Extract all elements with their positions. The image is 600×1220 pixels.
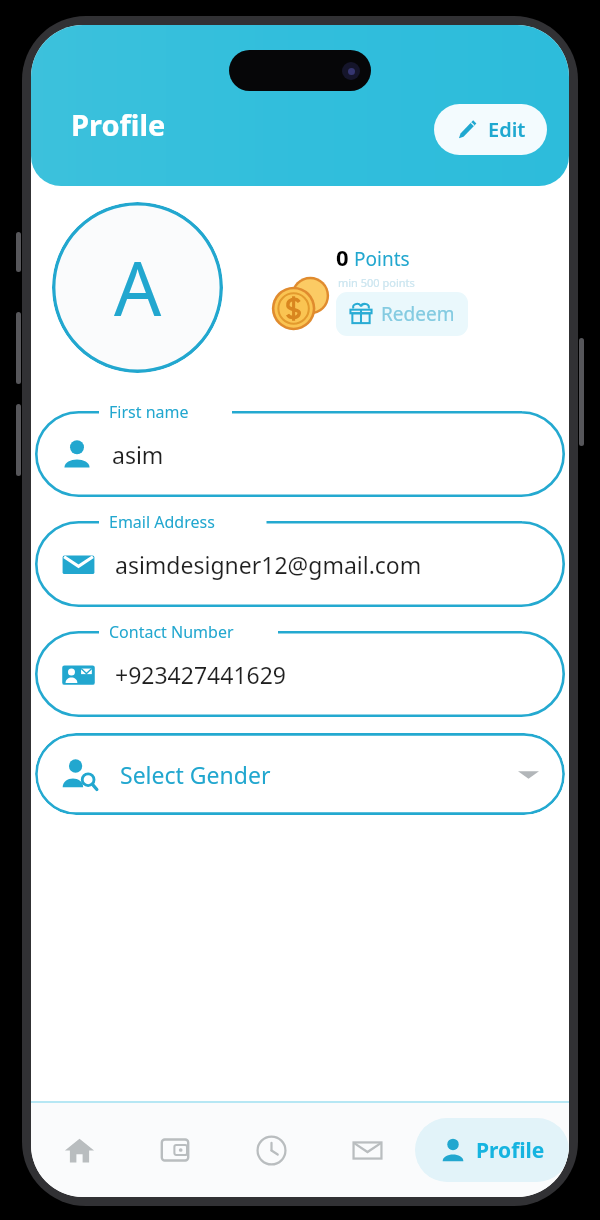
staticText: min 500 points <box>338 275 415 290</box>
button[interactable]: Profile <box>415 1118 569 1182</box>
staticText: First name <box>109 401 189 423</box>
staticText: 0 <box>336 242 349 272</box>
staticText: Profile <box>476 1136 545 1165</box>
button[interactable]: Profile photo <box>52 202 223 373</box>
staticText: asim <box>112 439 164 470</box>
button[interactable]: Messages <box>319 1103 415 1197</box>
button[interactable]: Home <box>31 1103 127 1197</box>
button[interactable] <box>35 521 565 607</box>
button[interactable]: Edit <box>434 104 547 155</box>
button[interactable] <box>35 631 565 717</box>
staticText: Profile <box>71 105 166 144</box>
staticText: asimdesigner12@gmail.com <box>115 549 422 580</box>
staticText: Select Gender <box>120 759 271 790</box>
button[interactable]: Wallet <box>127 1103 223 1197</box>
button[interactable]: Redeem <box>336 292 468 336</box>
button[interactable]: History <box>223 1103 319 1197</box>
staticText: Redeem <box>381 301 455 327</box>
button[interactable]: Select Gender <box>35 733 565 815</box>
staticText: +923427441629 <box>115 659 287 690</box>
staticText: Email Address <box>109 511 215 533</box>
staticText: Edit <box>488 116 526 143</box>
staticText: A <box>114 237 162 338</box>
staticText: Points <box>354 246 410 272</box>
button[interactable] <box>35 411 565 497</box>
staticText: Contact Number <box>109 621 234 643</box>
